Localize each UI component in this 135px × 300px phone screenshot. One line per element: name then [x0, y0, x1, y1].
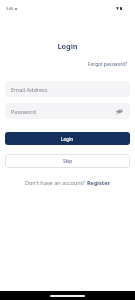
- button[interactable]: Skip: [5, 154, 130, 168]
- staticText: Forgot password?: [88, 61, 127, 67]
- staticText: Skip: [63, 158, 73, 164]
- staticText: 3:46: [6, 6, 14, 11]
- button[interactable]: Show password: [115, 107, 124, 116]
- button[interactable]: Forgot password?: [88, 61, 127, 67]
- staticText: Register: [87, 179, 110, 186]
- staticText: Email Address: [11, 86, 48, 93]
- button[interactable]: Password: [5, 103, 130, 119]
- staticText: Password: [11, 108, 36, 115]
- button[interactable]: Login: [5, 132, 130, 145]
- staticText: Login: [0, 41, 135, 51]
- staticText: Don't have an account?: [25, 179, 87, 186]
- button[interactable]: Email Address: [5, 81, 130, 97]
- staticText: Login: [61, 136, 74, 142]
- button[interactable]: Register: [87, 179, 110, 186]
